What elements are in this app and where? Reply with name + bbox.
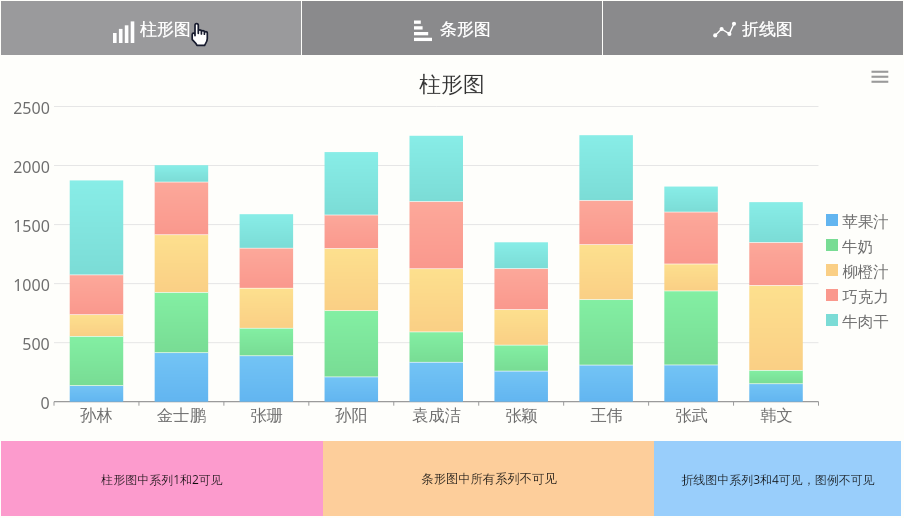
- staticText: 孙阳: [335, 405, 368, 426]
- staticText: 2500: [13, 97, 50, 119]
- staticText: 柱形图: [140, 19, 191, 40]
- button[interactable]: 苹果汁: [826, 210, 889, 230]
- staticText: 牛肉干: [842, 312, 889, 332]
- staticText: 张武: [675, 405, 708, 426]
- staticText: 柳橙汁: [842, 262, 889, 282]
- staticText: 王伟: [590, 405, 623, 426]
- staticText: 柱形图中系列1和2可见: [101, 471, 223, 487]
- staticText: 袁成洁: [412, 405, 461, 426]
- button[interactable]: 折线图中系列3和4可见，图例不可见: [654, 441, 901, 516]
- button[interactable]: 巧克力: [826, 285, 889, 305]
- staticText: 折线图: [742, 19, 793, 40]
- staticText: 韩文: [760, 405, 793, 426]
- button[interactable]: 折线图: [603, 1, 903, 55]
- button[interactable]: 牛奶: [826, 235, 873, 255]
- staticText: 500: [22, 333, 50, 355]
- staticText: 金士鹏: [157, 405, 206, 426]
- staticText: 张珊: [250, 405, 283, 426]
- button[interactable]: 柳橙汁: [826, 260, 889, 280]
- staticText: 苹果汁: [842, 212, 889, 232]
- staticText: 条形图: [440, 19, 491, 40]
- button[interactable]: 柱形图: [1, 1, 301, 55]
- button[interactable]: 条形图: [302, 1, 602, 55]
- staticText: 2000: [13, 156, 50, 178]
- staticText: 折线图中系列3和4可见，图例不可见: [681, 471, 875, 487]
- staticText: 0: [40, 392, 50, 414]
- staticText: 1000: [13, 274, 50, 296]
- button[interactable]: 牛肉干: [826, 310, 889, 330]
- staticText: 柱形图: [419, 71, 485, 97]
- staticText: 条形图中所有系列不可见: [421, 471, 557, 486]
- staticText: 巧克力: [842, 287, 889, 307]
- staticText: 张颖: [505, 405, 538, 426]
- button[interactable]: 柱形图中系列1和2可见: [1, 441, 323, 516]
- button[interactable]: 条形图中所有系列不可见: [323, 441, 654, 516]
- other: Pointer: [189, 22, 211, 48]
- staticText: 牛奶: [842, 237, 873, 257]
- staticText: 1500: [13, 215, 50, 237]
- button[interactable]: Menu: [869, 64, 893, 88]
- staticText: 孙林: [80, 405, 113, 426]
